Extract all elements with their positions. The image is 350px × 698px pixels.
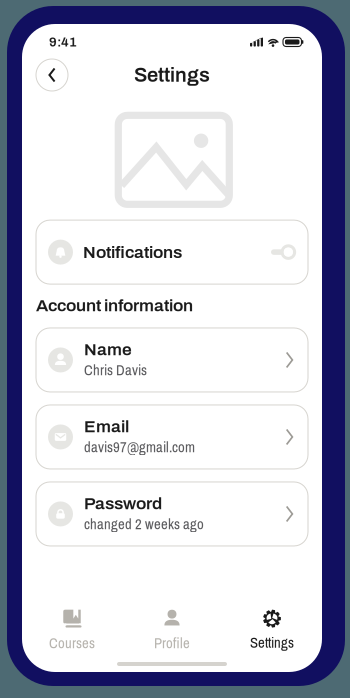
button[interactable]: Notifications bbox=[36, 220, 308, 284]
staticText: Notifications bbox=[83, 243, 182, 262]
button[interactable]: Profile bbox=[122, 609, 222, 653]
staticText: Profile bbox=[154, 633, 190, 653]
button[interactable]: Name bbox=[36, 328, 308, 392]
button[interactable]: Courses bbox=[22, 609, 122, 653]
staticText: Settings bbox=[134, 64, 210, 86]
button[interactable]: Back bbox=[36, 59, 68, 91]
staticText: Password bbox=[84, 494, 162, 513]
staticText: 9:41 bbox=[49, 35, 77, 49]
button[interactable]: Password bbox=[36, 482, 308, 546]
staticText: Settings bbox=[250, 633, 294, 652]
staticText: Chris Davis bbox=[84, 360, 147, 380]
staticText: Email bbox=[84, 417, 129, 436]
staticText: Courses bbox=[49, 633, 95, 653]
staticText: davis97@gmail.com bbox=[84, 437, 195, 457]
staticText: Account information bbox=[36, 296, 193, 315]
staticText: Name bbox=[84, 340, 132, 359]
button[interactable]: Email bbox=[36, 405, 308, 469]
staticText: changed 2 weeks ago bbox=[84, 514, 204, 534]
button[interactable]: Settings bbox=[222, 609, 322, 653]
